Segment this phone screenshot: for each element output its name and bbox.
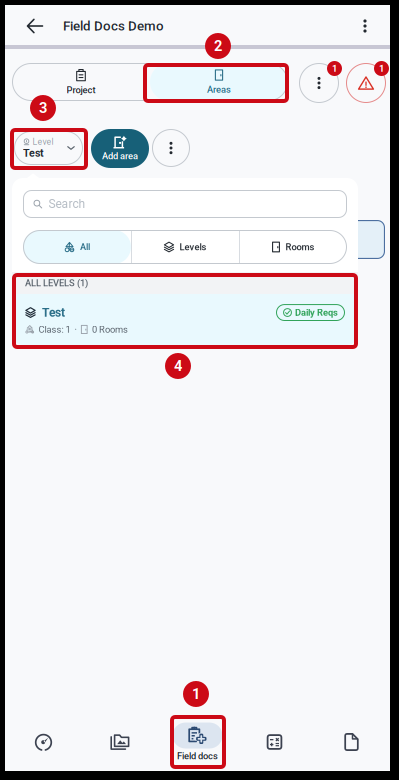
staticText: 1 xyxy=(192,685,200,703)
staticText: All xyxy=(80,241,90,252)
staticText: Search xyxy=(48,197,85,211)
staticText: 1 xyxy=(379,63,384,74)
button[interactable]: Test xyxy=(12,294,358,345)
staticText: Add area xyxy=(102,150,138,161)
staticText: Test xyxy=(23,147,44,159)
button[interactable]: Levels xyxy=(131,230,239,264)
button[interactable]: Areas xyxy=(150,63,288,101)
button[interactable]: Issues xyxy=(346,63,386,103)
staticText: 0 Rooms xyxy=(92,324,128,335)
button[interactable]: More xyxy=(299,63,339,103)
button[interactable]: Project xyxy=(12,63,150,101)
staticText: Levels xyxy=(179,241,206,252)
button[interactable]: Field docs xyxy=(159,718,236,766)
button[interactable]: More options xyxy=(348,11,382,41)
staticText: Project xyxy=(66,84,95,95)
staticText: Rooms xyxy=(285,241,314,252)
staticText: Field Docs Demo xyxy=(63,18,164,34)
button[interactable]: Dashboard xyxy=(5,718,82,766)
button[interactable]: Level xyxy=(14,131,83,165)
staticText: 4 xyxy=(174,357,182,375)
staticText: 3 xyxy=(39,99,47,117)
button[interactable]: Area options xyxy=(152,129,190,167)
button[interactable]: Rooms xyxy=(239,230,347,264)
button[interactable]: Back xyxy=(17,12,53,40)
button[interactable]: Calculations xyxy=(236,718,313,766)
button[interactable]: Add area xyxy=(91,129,149,168)
staticText: Level xyxy=(32,137,53,147)
staticText: ALL LEVELS (1) xyxy=(25,277,88,288)
button[interactable]: All xyxy=(23,230,131,264)
staticText: Field docs xyxy=(177,750,218,761)
staticText: 2 xyxy=(214,37,222,55)
staticText: Daily Reqs xyxy=(295,307,338,318)
staticText: 1 xyxy=(332,63,337,74)
button[interactable]: Documents xyxy=(313,718,390,766)
staticText: Test xyxy=(42,305,65,320)
staticText: Class: 1 · xyxy=(38,324,76,335)
button[interactable]: Photos xyxy=(82,718,159,766)
staticText: Areas xyxy=(207,84,231,95)
